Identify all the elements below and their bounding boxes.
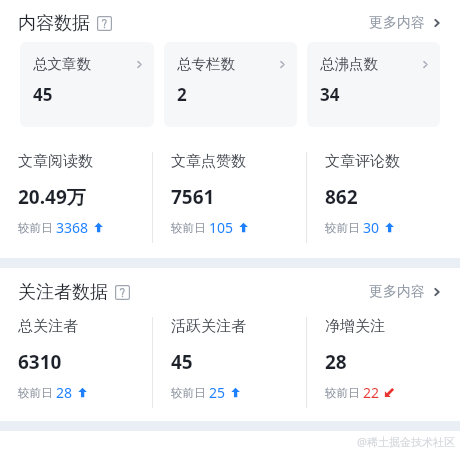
button[interactable]: 总关注者 xyxy=(0,313,152,412)
staticText: 文章评论数 xyxy=(325,152,400,171)
staticText: 较前日 xyxy=(18,385,56,401)
button[interactable]: 更多内容 xyxy=(369,277,443,307)
staticText: 更多内容 xyxy=(369,14,425,32)
button[interactable]: 总专栏数 xyxy=(164,42,297,127)
staticText: 862 xyxy=(325,184,358,210)
staticText: 文章阅读数 xyxy=(18,152,93,171)
staticText: 20.49万 xyxy=(18,184,86,210)
staticText: 总关注者 xyxy=(18,317,78,336)
staticText: 22 xyxy=(363,383,380,402)
staticText: 2 xyxy=(177,83,187,106)
other: Help xyxy=(115,285,130,300)
staticText: 28 xyxy=(56,383,73,402)
button[interactable]: 总文章数 xyxy=(20,42,154,127)
staticText: 30 xyxy=(363,218,380,237)
staticText: 45 xyxy=(171,349,193,375)
staticText: 内容数据 xyxy=(18,12,90,35)
staticText: 较前日 xyxy=(171,385,209,401)
staticText: 总文章数 xyxy=(33,55,91,73)
staticText: 总专栏数 xyxy=(177,55,235,73)
staticText: 较前日 xyxy=(171,220,209,236)
button[interactable]: 活跃关注者 xyxy=(153,313,306,412)
button[interactable]: 净增关注 xyxy=(307,313,460,412)
staticText: 较前日 xyxy=(325,385,363,401)
staticText: @稀土掘金技术社区 xyxy=(357,434,455,449)
staticText: 总沸点数 xyxy=(320,55,378,73)
button[interactable]: 更多内容 xyxy=(369,8,443,38)
button[interactable]: 文章评论数 xyxy=(307,148,460,247)
staticText: 较前日 xyxy=(325,220,363,236)
staticText: 6310 xyxy=(18,349,62,375)
button[interactable]: 文章点赞数 xyxy=(153,148,306,247)
staticText: 3368 xyxy=(56,218,89,237)
staticText: 更多内容 xyxy=(369,283,425,301)
staticText: 关注者数据 xyxy=(18,281,108,304)
button[interactable]: 文章阅读数 xyxy=(0,148,152,247)
button[interactable]: 总沸点数 xyxy=(307,42,440,127)
staticText: 较前日 xyxy=(18,220,56,236)
staticText: 25 xyxy=(209,383,226,402)
staticText: 活跃关注者 xyxy=(171,317,246,336)
staticText: 7561 xyxy=(171,184,215,210)
staticText: 45 xyxy=(33,83,53,106)
staticText: 34 xyxy=(320,83,340,106)
staticText: 105 xyxy=(209,218,234,237)
staticText: 净增关注 xyxy=(325,317,385,336)
staticText: 28 xyxy=(325,349,347,375)
other: Help xyxy=(97,16,112,31)
staticText: 文章点赞数 xyxy=(171,152,246,171)
